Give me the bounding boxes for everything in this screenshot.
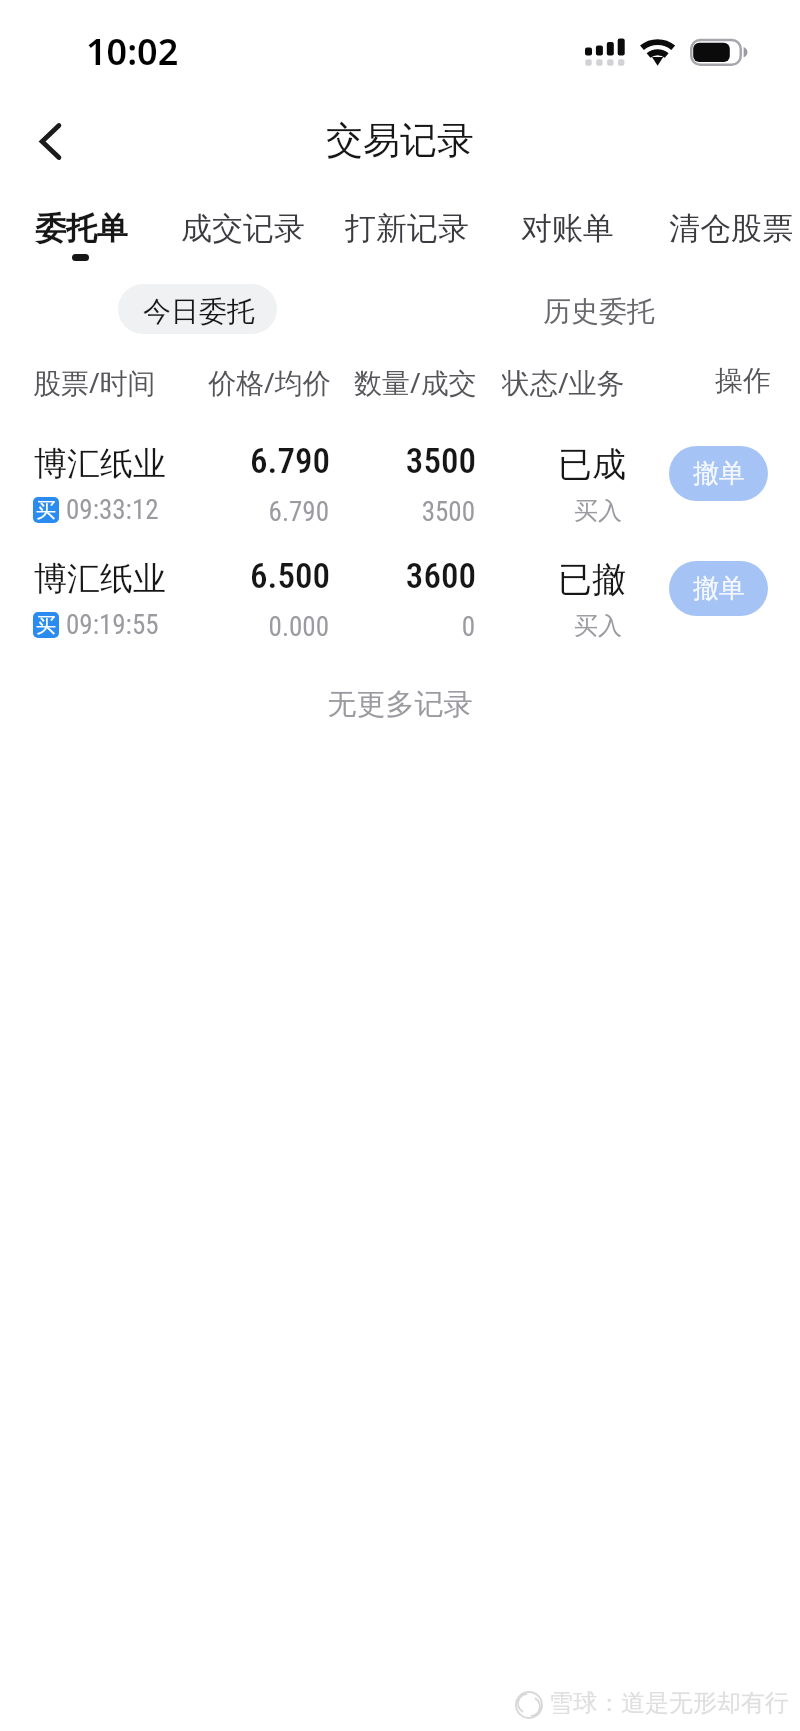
staticText: 6.500 [0, 556, 330, 597]
button[interactable]: 清仓股票 [669, 200, 797, 262]
staticText: 买 [36, 498, 56, 523]
staticText: 买入 [0, 496, 622, 526]
staticText: 价格/均价 [208, 363, 331, 399]
button[interactable]: 博汇纸业 [0, 438, 800, 550]
button[interactable]: 委托单 [35, 200, 130, 262]
button[interactable]: 对账单 [521, 200, 616, 262]
staticText: 0 [0, 611, 475, 643]
button[interactable]: 撤单 [669, 561, 768, 616]
button[interactable]: 成交记录 [181, 200, 307, 262]
staticText: 0.000 [0, 611, 329, 643]
staticText: 状态/业务 [502, 363, 625, 399]
staticText: 撤单 [693, 457, 745, 490]
button[interactable]: 今日委托 [118, 284, 277, 334]
staticText: 3600 [0, 556, 476, 597]
staticText: 数量/成交 [354, 363, 477, 399]
staticText: 今日委托 [143, 294, 255, 329]
staticText: 博汇纸业 [34, 558, 166, 600]
staticText: 交易记录 [0, 117, 800, 164]
staticText: 博汇纸业 [34, 443, 166, 485]
staticText: 清仓股票 [669, 209, 793, 248]
staticText: 操作 [715, 363, 771, 398]
staticText: 已成 [0, 443, 626, 486]
staticText: 打新记录 [345, 209, 469, 248]
staticText: 历史委托 [543, 294, 655, 329]
staticText: 买 [36, 613, 56, 638]
button[interactable]: 历史委托 [519, 284, 678, 334]
staticText: 09:33:12 [66, 494, 159, 526]
button[interactable]: Back [19, 110, 81, 172]
staticText: 对账单 [521, 209, 614, 248]
staticText: 已撤 [0, 558, 626, 601]
button[interactable]: 博汇纸业 [0, 553, 800, 665]
staticText: 无更多记录 [0, 686, 800, 723]
button[interactable]: 撤单 [669, 446, 768, 501]
staticText: 09:19:55 [66, 609, 159, 641]
staticText: 股票/时间 [33, 363, 156, 399]
staticText: 委托单 [35, 209, 128, 248]
staticText: 3500 [0, 441, 476, 482]
staticText: 3500 [0, 496, 475, 528]
staticText: 10:02 [86, 27, 179, 76]
staticText: 雪球：道是无形却有行 [549, 1688, 789, 1718]
staticText: 买入 [0, 611, 622, 641]
staticText: 成交记录 [181, 209, 305, 248]
button[interactable]: 打新记录 [345, 200, 471, 262]
staticText: 6.790 [0, 496, 329, 528]
staticText: 撤单 [693, 572, 745, 605]
staticText: 6.790 [0, 441, 330, 482]
